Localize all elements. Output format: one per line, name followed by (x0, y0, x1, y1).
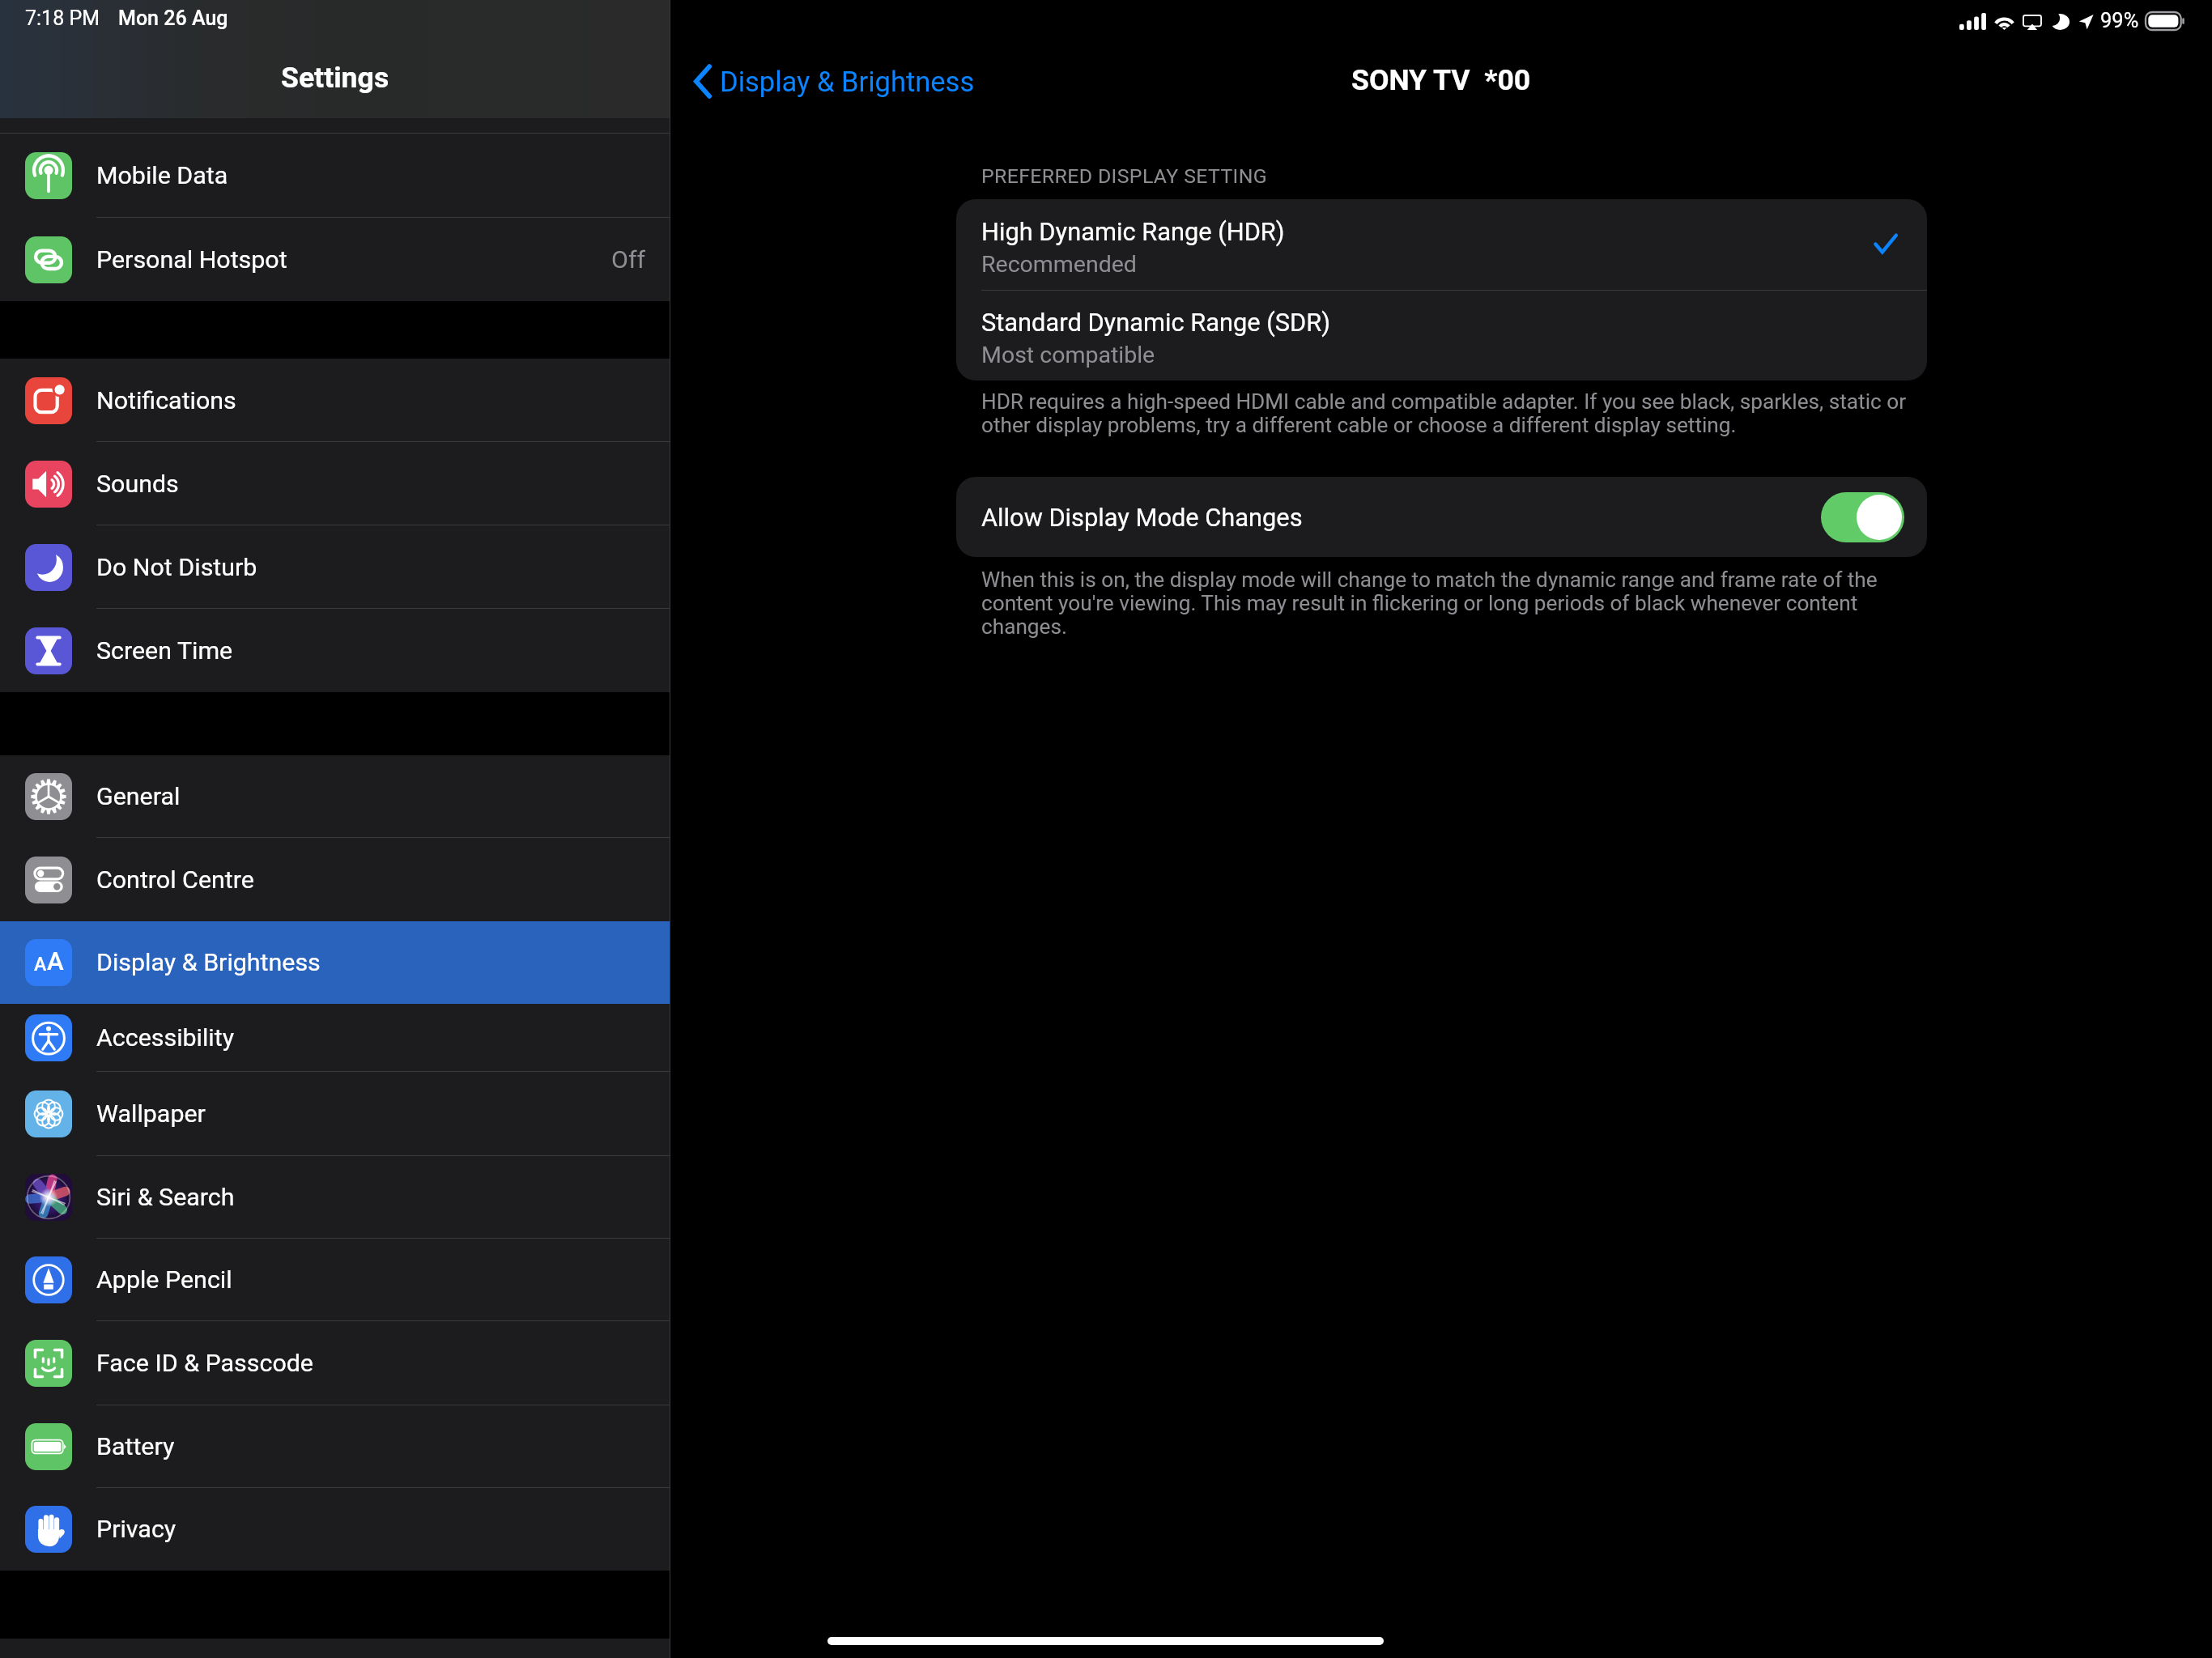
button[interactable]: Sounds (0, 442, 670, 525)
button[interactable]: Screen Time (0, 609, 670, 692)
button[interactable]: Wallpaper (0, 1072, 670, 1156)
staticText: A (47, 946, 64, 976)
button[interactable]: General (0, 755, 670, 838)
button[interactable]: High Dynamic Range (HDR) (956, 199, 1927, 290)
button[interactable]: Personal Hotspot (0, 218, 670, 301)
staticText: Off (611, 245, 646, 274)
staticText: Control Centre (96, 865, 646, 895)
staticText: Personal Hotspot (96, 245, 611, 274)
button[interactable]: Do Not Disturb (0, 525, 670, 609)
staticText: Battery (96, 1432, 646, 1461)
staticText: HDR requires a high-speed HDMI cable and… (981, 389, 1921, 437)
staticText: 7:18 PM (25, 6, 100, 30)
button[interactable]: Accessibility (0, 1004, 670, 1072)
staticText: Display & Brightness (96, 948, 646, 977)
button[interactable]: Allow Display Mode Changes (956, 477, 1927, 557)
staticText: PREFERRED DISPLAY SETTING (981, 164, 1268, 188)
button[interactable]: Allow Display Mode Changes toggle (1821, 492, 1904, 542)
staticText: Notifications (96, 386, 646, 415)
button[interactable]: Notifications (0, 359, 670, 442)
staticText: High Dynamic Range (HDR) (981, 217, 1285, 246)
staticText: Display & Brightness (720, 66, 975, 98)
staticText: Privacy (96, 1515, 646, 1544)
button[interactable]: Battery (0, 1405, 670, 1488)
staticText: Apple Pencil (96, 1265, 646, 1295)
button[interactable]: Mobile Data (0, 134, 670, 218)
staticText: Wallpaper (96, 1099, 646, 1129)
button[interactable]: A (0, 921, 670, 1004)
staticText: Recommended (981, 251, 1137, 278)
staticText: Face ID & Passcode (96, 1349, 646, 1378)
staticText: Allow Display Mode Changes (981, 503, 1303, 532)
button[interactable]: Apple Pencil (0, 1239, 670, 1321)
button[interactable]: Privacy (0, 1488, 670, 1571)
staticText: Standard Dynamic Range (SDR) (981, 308, 1330, 337)
staticText: Settings (281, 61, 389, 95)
button[interactable]: Control Centre (0, 838, 670, 921)
staticText: Do Not Disturb (96, 553, 646, 582)
button[interactable]: Face ID & Passcode (0, 1321, 670, 1405)
staticText: A (34, 954, 47, 976)
staticText: Siri & Search (96, 1183, 646, 1212)
button[interactable]: Display & Brightness (685, 58, 983, 104)
staticText: Accessibility (96, 1023, 646, 1052)
staticText: Sounds (96, 470, 646, 499)
staticText: When this is on, the display mode will c… (981, 568, 1921, 639)
staticText: General (96, 782, 646, 811)
button[interactable]: Standard Dynamic Range (SDR) (956, 291, 1927, 380)
staticText: Mobile Data (96, 161, 646, 190)
staticText: SONY TV *00 (1351, 63, 1531, 97)
staticText: Most compatible (981, 342, 1155, 368)
staticText: Mon 26 Aug (118, 6, 228, 30)
staticText: 99% (2100, 8, 2139, 32)
button[interactable]: Siri & Search (0, 1156, 670, 1239)
staticText: Screen Time (96, 636, 646, 665)
